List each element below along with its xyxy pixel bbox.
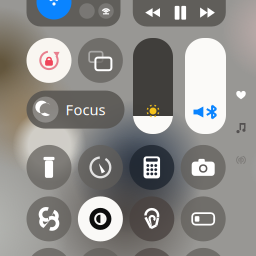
button[interactable]: Calculator [129,145,174,190]
button[interactable]: Pause [167,0,194,26]
button[interactable]: Focus [26,91,124,129]
button[interactable]: Screen Mirroring [78,38,123,83]
button[interactable]: Brightness [133,38,173,134]
button[interactable]: Shazam [26,196,71,241]
button[interactable]: Connectivity [26,0,120,26]
button[interactable]: Rewind [139,0,166,26]
button[interactable]: More controls [181,248,226,256]
button[interactable]: More controls [129,248,174,256]
button[interactable]: More controls [26,248,71,256]
button[interactable]: Fast forward [194,0,221,26]
button[interactable]: Hearing [129,196,174,241]
button[interactable]: Volume [185,38,226,134]
button[interactable]: Timer [78,145,123,190]
button[interactable]: Camera [181,145,226,190]
button[interactable]: Flashlight [26,145,71,190]
button[interactable]: Dark Mode [78,196,123,241]
button[interactable]: Rotation Lock [26,38,71,83]
staticText: Focus [65,100,105,119]
button[interactable]: Low Power Mode [181,196,226,241]
button[interactable]: More controls [78,248,123,256]
